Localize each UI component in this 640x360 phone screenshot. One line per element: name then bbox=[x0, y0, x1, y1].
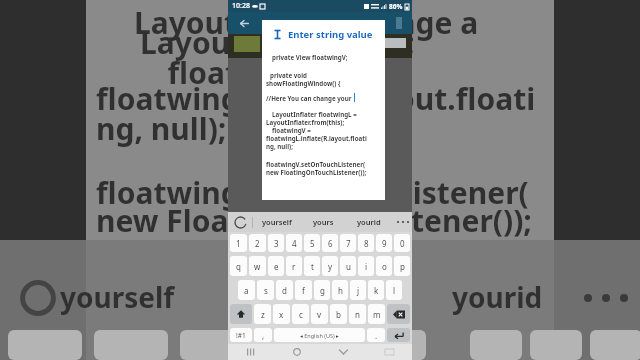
button[interactable]: w bbox=[249, 256, 266, 276]
staticText: Layouti bbox=[96, 2, 246, 43]
button[interactable]: p bbox=[394, 256, 410, 276]
staticText: LayoutInf bbox=[96, 22, 286, 63]
button[interactable]: Back bbox=[234, 13, 254, 33]
staticText: floatwingV = bbox=[272, 126, 311, 134]
button[interactable]: . bbox=[367, 328, 385, 342]
staticText: k bbox=[374, 285, 379, 296]
staticText: j bbox=[357, 285, 360, 296]
button[interactable]: yourself bbox=[253, 212, 300, 232]
button[interactable]: g bbox=[314, 280, 330, 300]
button[interactable]: q bbox=[230, 256, 247, 276]
button[interactable]: ◂ English (US) ▸ bbox=[274, 328, 365, 342]
button[interactable]: 6 bbox=[322, 234, 338, 252]
staticText: a bbox=[244, 285, 249, 296]
staticText: out.floati bbox=[396, 78, 576, 119]
button[interactable]: n bbox=[349, 304, 366, 324]
staticText: new FloatingOnTouchListener()); bbox=[266, 168, 367, 176]
button[interactable]: o bbox=[376, 256, 392, 276]
button[interactable]: v bbox=[311, 304, 328, 324]
button[interactable]: l bbox=[386, 280, 402, 300]
staticText: y bbox=[328, 261, 333, 272]
button[interactable]: yourid bbox=[346, 212, 392, 232]
button[interactable]: 8 bbox=[358, 234, 374, 252]
staticText: stener()); bbox=[396, 200, 576, 241]
staticText: h bbox=[338, 285, 343, 296]
staticText: u bbox=[346, 261, 351, 272]
staticText: !#1 bbox=[236, 331, 246, 340]
button[interactable]: j bbox=[350, 280, 366, 300]
button[interactable]: , bbox=[254, 328, 272, 342]
button[interactable]: More suggestions bbox=[392, 212, 412, 232]
staticText: 1 bbox=[236, 238, 241, 249]
button[interactable]: 9 bbox=[376, 234, 392, 252]
staticText: 7 bbox=[346, 238, 351, 249]
button[interactable]: i bbox=[358, 256, 374, 276]
staticText: q bbox=[236, 261, 241, 272]
staticText: ); bbox=[396, 22, 546, 63]
button[interactable]: u bbox=[340, 256, 356, 276]
button[interactable]: f bbox=[295, 280, 312, 300]
button[interactable]: m bbox=[368, 304, 385, 324]
button[interactable]: 7 bbox=[340, 234, 356, 252]
button[interactable]: a bbox=[238, 280, 255, 300]
staticText: v bbox=[317, 309, 322, 320]
staticText: nge a bbox=[396, 2, 546, 43]
button[interactable]: !#1 bbox=[230, 328, 252, 342]
button[interactable]: 5 bbox=[304, 234, 320, 252]
staticText: private View floatwingV; bbox=[272, 53, 348, 61]
staticText: 0 bbox=[400, 238, 405, 249]
button[interactable]: z bbox=[254, 304, 271, 324]
staticText: x bbox=[279, 309, 284, 320]
staticText: yourself bbox=[60, 278, 220, 316]
button[interactable]: 0 bbox=[394, 234, 410, 252]
button[interactable]: Voice input bbox=[228, 212, 252, 232]
staticText: 3 bbox=[274, 238, 279, 249]
button[interactable]: b bbox=[330, 304, 347, 324]
staticText: yourid bbox=[452, 278, 612, 316]
button[interactable]: h bbox=[332, 280, 348, 300]
button[interactable]: k bbox=[368, 280, 384, 300]
button[interactable]: s bbox=[257, 280, 274, 300]
staticText: n bbox=[355, 309, 360, 320]
staticText: floatwing bbox=[96, 78, 286, 119]
button[interactable]: 3 bbox=[268, 234, 284, 252]
staticText: floatwingV.setOnTouchListener( bbox=[266, 160, 366, 168]
staticText: s bbox=[264, 285, 268, 296]
button[interactable]: y bbox=[322, 256, 338, 276]
staticText: 9 bbox=[382, 238, 387, 249]
button[interactable]: Home bbox=[274, 344, 320, 360]
staticText: 2 bbox=[255, 238, 260, 249]
button[interactable]: More options bbox=[390, 14, 408, 32]
button[interactable]: c bbox=[292, 304, 309, 324]
button[interactable]: 1 bbox=[230, 234, 247, 252]
button[interactable]: 4 bbox=[286, 234, 302, 252]
staticText: g bbox=[320, 285, 325, 296]
button[interactable]: d bbox=[276, 280, 293, 300]
button[interactable]: t bbox=[304, 256, 320, 276]
staticText: i bbox=[365, 261, 368, 272]
staticText: showFloatingWindow() { bbox=[266, 79, 341, 87]
staticText: p bbox=[400, 261, 405, 272]
button[interactable]: e bbox=[268, 256, 284, 276]
button[interactable]: Shift bbox=[230, 304, 252, 324]
staticText: d bbox=[282, 285, 287, 296]
staticText: 5 bbox=[310, 238, 315, 249]
button[interactable]: yours bbox=[300, 212, 346, 232]
staticText: ng, null); bbox=[266, 142, 293, 150]
staticText: m bbox=[373, 309, 381, 320]
staticText: Listener( bbox=[396, 172, 576, 213]
button[interactable]: Back bbox=[320, 344, 366, 360]
staticText: floatwingL.inflate(R.layout.floati bbox=[266, 134, 367, 142]
button[interactable]: 2 bbox=[249, 234, 266, 252]
staticText: yours bbox=[313, 217, 334, 227]
button[interactable]: x bbox=[273, 304, 290, 324]
staticText: z bbox=[261, 309, 265, 320]
button[interactable]: Keyboard bbox=[366, 344, 412, 360]
staticText: r bbox=[292, 261, 296, 272]
staticText: floatwing bbox=[96, 172, 286, 213]
button[interactable]: Backspace bbox=[387, 304, 410, 324]
button[interactable]: r bbox=[286, 256, 302, 276]
staticText: f bbox=[302, 285, 305, 296]
button[interactable]: Recents bbox=[228, 344, 274, 360]
button[interactable]: Enter bbox=[387, 328, 410, 342]
